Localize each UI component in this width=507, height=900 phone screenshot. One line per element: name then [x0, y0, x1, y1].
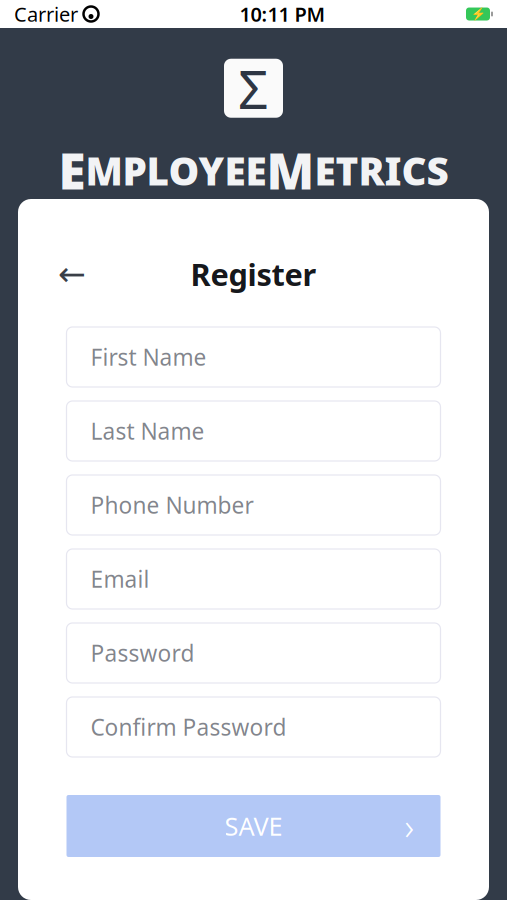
staticText: ←	[58, 255, 86, 293]
staticText: Password	[90, 638, 194, 668]
staticText: M	[266, 138, 314, 203]
staticText: Register	[190, 254, 316, 294]
staticText: First Name	[90, 342, 206, 372]
button[interactable]: Back	[50, 252, 94, 296]
staticText: Carrier	[14, 1, 78, 27]
button[interactable]: Last Name	[66, 401, 440, 461]
staticText: Phone Number	[90, 490, 253, 520]
staticText: Last Name	[90, 416, 204, 446]
button[interactable]: Email	[66, 549, 440, 609]
staticText: SAVE	[224, 809, 282, 843]
button[interactable]: Password	[66, 623, 440, 683]
button[interactable]: First Name	[66, 327, 440, 387]
button[interactable]: Confirm Password	[66, 697, 440, 757]
staticText: Σ	[238, 53, 269, 124]
button[interactable]: SAVE	[66, 795, 440, 857]
staticText: Email	[90, 564, 149, 594]
staticText: 10:11 PM	[239, 1, 325, 27]
staticText: MPLOYEE	[85, 145, 266, 196]
button[interactable]: Phone Number	[66, 475, 440, 535]
staticText: Confirm Password	[90, 712, 286, 742]
staticText: E	[58, 138, 85, 203]
staticText: ETRICS	[314, 145, 448, 196]
staticText: ›	[404, 802, 414, 850]
staticText: ⚡	[470, 7, 485, 21]
